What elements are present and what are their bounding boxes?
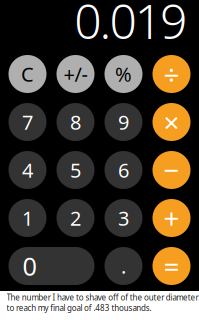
staticText: ÷ [163, 55, 179, 93]
button[interactable]: 1 [8, 199, 46, 237]
staticText: 6 [118, 157, 129, 183]
button[interactable]: = [152, 247, 190, 285]
button[interactable]: 9 [104, 103, 142, 141]
staticText: + [163, 199, 179, 237]
button[interactable]: × [152, 103, 190, 141]
staticText: − [163, 151, 179, 189]
button[interactable]: . [104, 247, 142, 285]
button[interactable]: 4 [8, 151, 46, 189]
staticText: C [21, 61, 34, 87]
button[interactable]: 6 [104, 151, 142, 189]
button[interactable]: +/- [56, 55, 94, 93]
button[interactable]: 3 [104, 199, 142, 237]
staticText: × [163, 103, 179, 141]
staticText: 8 [70, 109, 81, 135]
staticText: 0.019 [74, 0, 187, 52]
staticText: 5 [70, 157, 81, 183]
button[interactable]: 0 [8, 247, 94, 285]
button[interactable]: 8 [56, 103, 94, 141]
staticText: 7 [22, 109, 33, 135]
staticText: 1 [22, 205, 33, 231]
staticText: 2 [70, 205, 81, 231]
button[interactable]: 2 [56, 199, 94, 237]
staticText: 4 [22, 157, 33, 183]
button[interactable]: 7 [8, 103, 46, 141]
staticText: 0 [22, 249, 36, 283]
button[interactable]: 5 [56, 151, 94, 189]
button[interactable]: ÷ [152, 55, 190, 93]
button[interactable]: + [152, 199, 190, 237]
staticText: +/- [63, 61, 87, 87]
staticText: % [115, 61, 132, 87]
staticText: = [163, 247, 179, 285]
staticText: 9 [118, 109, 129, 135]
staticText: to reach my final goal of .483 thousands… [7, 303, 152, 313]
button[interactable]: C [8, 55, 46, 93]
staticText: 3 [118, 205, 129, 231]
staticText: . [121, 253, 126, 279]
button[interactable]: % [104, 55, 142, 93]
staticText: The number I have to shave off of the ou… [7, 292, 198, 303]
button[interactable]: − [152, 151, 190, 189]
